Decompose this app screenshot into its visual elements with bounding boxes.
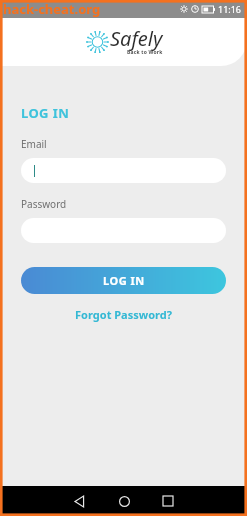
button[interactable]: Back bbox=[58, 486, 102, 516]
button[interactable]: Recent apps bbox=[146, 486, 190, 516]
button[interactable]: LOG IN bbox=[21, 267, 226, 294]
button[interactable]: Home bbox=[102, 486, 146, 516]
staticText: Back to Work bbox=[127, 49, 163, 56]
staticText: Forgot Password? bbox=[75, 307, 172, 322]
staticText: Email bbox=[21, 137, 47, 151]
staticText: Password bbox=[21, 197, 67, 211]
staticText: Safely bbox=[110, 25, 163, 52]
staticText: hack-cheat.org bbox=[3, 0, 101, 18]
staticText: LOG IN bbox=[103, 273, 145, 288]
staticText: 11:16 bbox=[218, 3, 242, 15]
staticText: LOG IN bbox=[21, 104, 70, 122]
button[interactable]: Forgot Password? bbox=[69, 305, 178, 324]
button[interactable] bbox=[21, 158, 226, 183]
